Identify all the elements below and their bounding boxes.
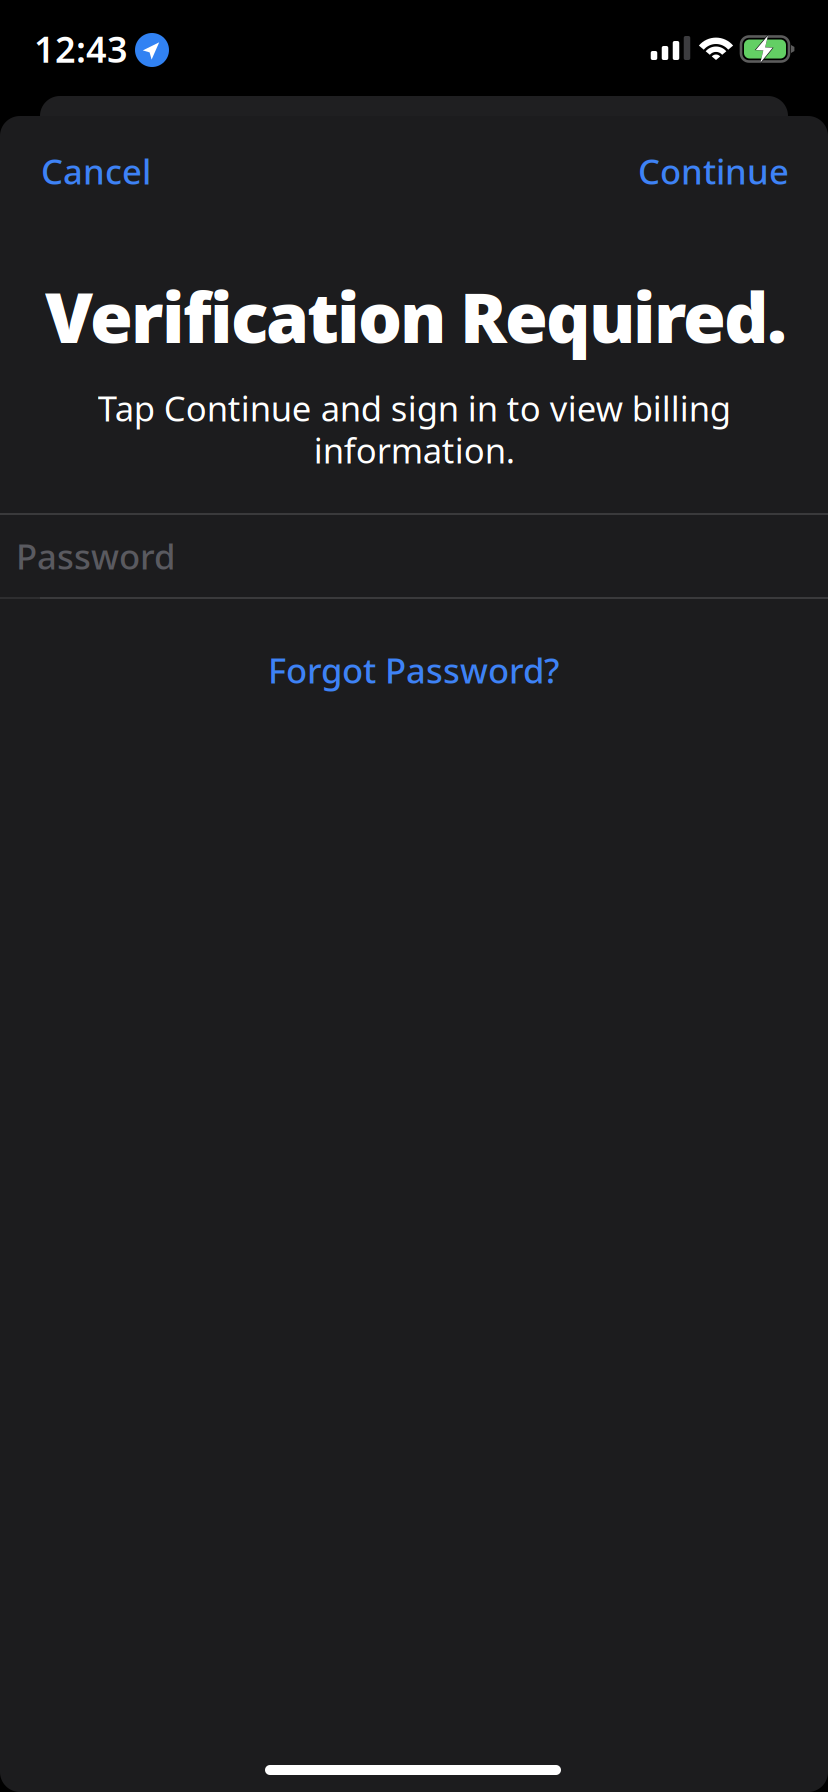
button[interactable]: Forgot Password? [248, 629, 579, 711]
button[interactable]: Password [0, 513, 828, 599]
staticText: Tap Continue and sign in to view billing… [97, 385, 730, 473]
staticText: Password [16, 533, 175, 579]
staticText: Verification Required. [45, 270, 787, 362]
button[interactable]: Cancel [29, 130, 163, 212]
staticText: 12:43 [34, 25, 128, 73]
staticText: Forgot Password? [268, 647, 559, 693]
staticText: Cancel [41, 148, 151, 194]
button[interactable]: Continue [626, 130, 801, 212]
staticText: Continue [638, 148, 789, 194]
